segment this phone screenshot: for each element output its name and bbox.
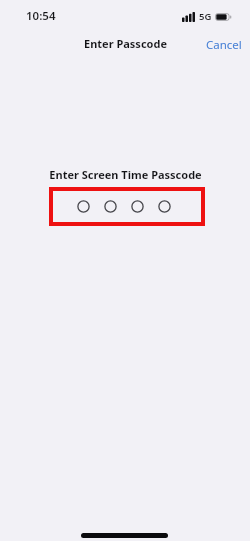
button[interactable]: Passcode entry field xyxy=(49,187,205,226)
staticText: 10:54 xyxy=(26,8,56,24)
staticText: Enter Passcode xyxy=(84,36,167,51)
button[interactable]: Cancel xyxy=(200,0,250,59)
staticText: Cancel xyxy=(206,37,242,53)
staticText: Enter Screen Time Passcode xyxy=(49,167,202,182)
staticText: 5G xyxy=(199,10,212,23)
